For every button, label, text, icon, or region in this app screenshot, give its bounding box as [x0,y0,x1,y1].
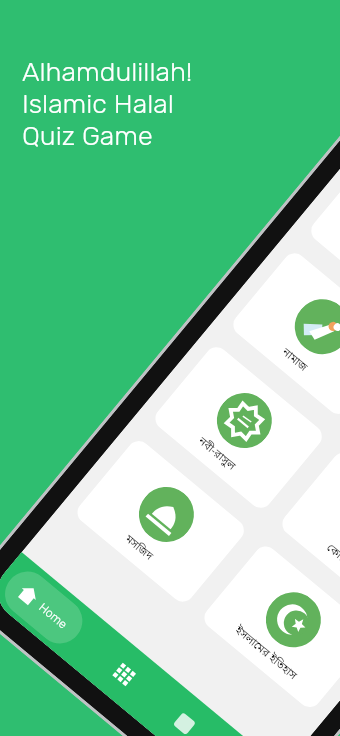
button[interactable]: ইসলামের ইতিহাস [200,542,340,712]
staticText: কোরবানি [323,541,340,579]
staticText: Alhamdulillah! [22,56,192,88]
button[interactable]: Mosque [99,648,150,699]
button[interactable]: কোরআন [306,155,340,325]
staticText: মসজিদ [121,532,156,565]
staticText: নামাজ [278,345,310,376]
button[interactable]: Book [159,698,210,736]
staticText: Home [36,600,70,632]
button[interactable]: নামাজ [228,248,340,419]
staticText: নবী-রাসুল [194,434,238,475]
button[interactable]: মসজিদ [73,436,249,606]
staticText: ইসলামের ইতিহাস [231,623,300,684]
button[interactable]: কোরবানি [277,448,340,618]
button[interactable]: Home [0,562,92,653]
staticText: Islamic Halal [22,88,174,120]
button[interactable]: নবী-রাসুল [151,342,327,513]
staticText: Quiz Game [22,120,153,152]
